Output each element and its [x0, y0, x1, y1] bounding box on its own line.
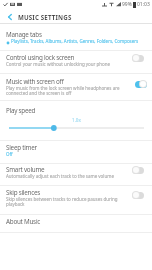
staticText: Smart volume	[6, 165, 45, 174]
staticText: Playlists, Tracks, Albums, Artists, Genr…	[11, 38, 139, 44]
button[interactable]: Manage tabs	[0, 24, 152, 50]
button[interactable]: Back	[3, 10, 16, 23]
staticText: Automatically adjust each track to the s…	[6, 173, 114, 179]
button[interactable]: Control using lock screen	[132, 53, 147, 63]
staticText: Control using lock screen	[6, 53, 75, 62]
staticText: 99%	[122, 1, 132, 8]
staticText: Off	[6, 151, 13, 157]
button[interactable]: Music with screen off	[0, 73, 152, 100]
staticText: Play music from the lock screen while he…	[6, 85, 120, 96]
staticText: Skip silences	[6, 188, 41, 197]
button[interactable]: Skip silences	[0, 185, 152, 214]
button[interactable]: Sleep timer	[0, 140, 152, 163]
staticText: Manage tabs	[6, 30, 42, 39]
staticText: 01:03	[137, 1, 150, 8]
button[interactable]: Music with screen off	[132, 79, 147, 89]
staticText: Control your music without unlocking you…	[6, 61, 111, 67]
staticText: About Music	[6, 217, 41, 226]
staticText: MUSIC SETTINGS	[18, 13, 72, 21]
button[interactable]: Smart volume	[0, 163, 152, 185]
button[interactable]: Skip silences	[132, 190, 147, 200]
button[interactable]: Control using lock screen	[0, 50, 152, 73]
staticText: Play speed	[6, 106, 36, 115]
staticText: Skip silences between tracks to reduce p…	[6, 196, 118, 207]
button[interactable]: Smart volume	[132, 165, 147, 175]
staticText: Music with screen off	[6, 77, 64, 86]
staticText: 1.0x	[72, 117, 81, 123]
staticText: Sleep timer	[6, 143, 37, 152]
button[interactable]: About Music	[0, 214, 152, 232]
